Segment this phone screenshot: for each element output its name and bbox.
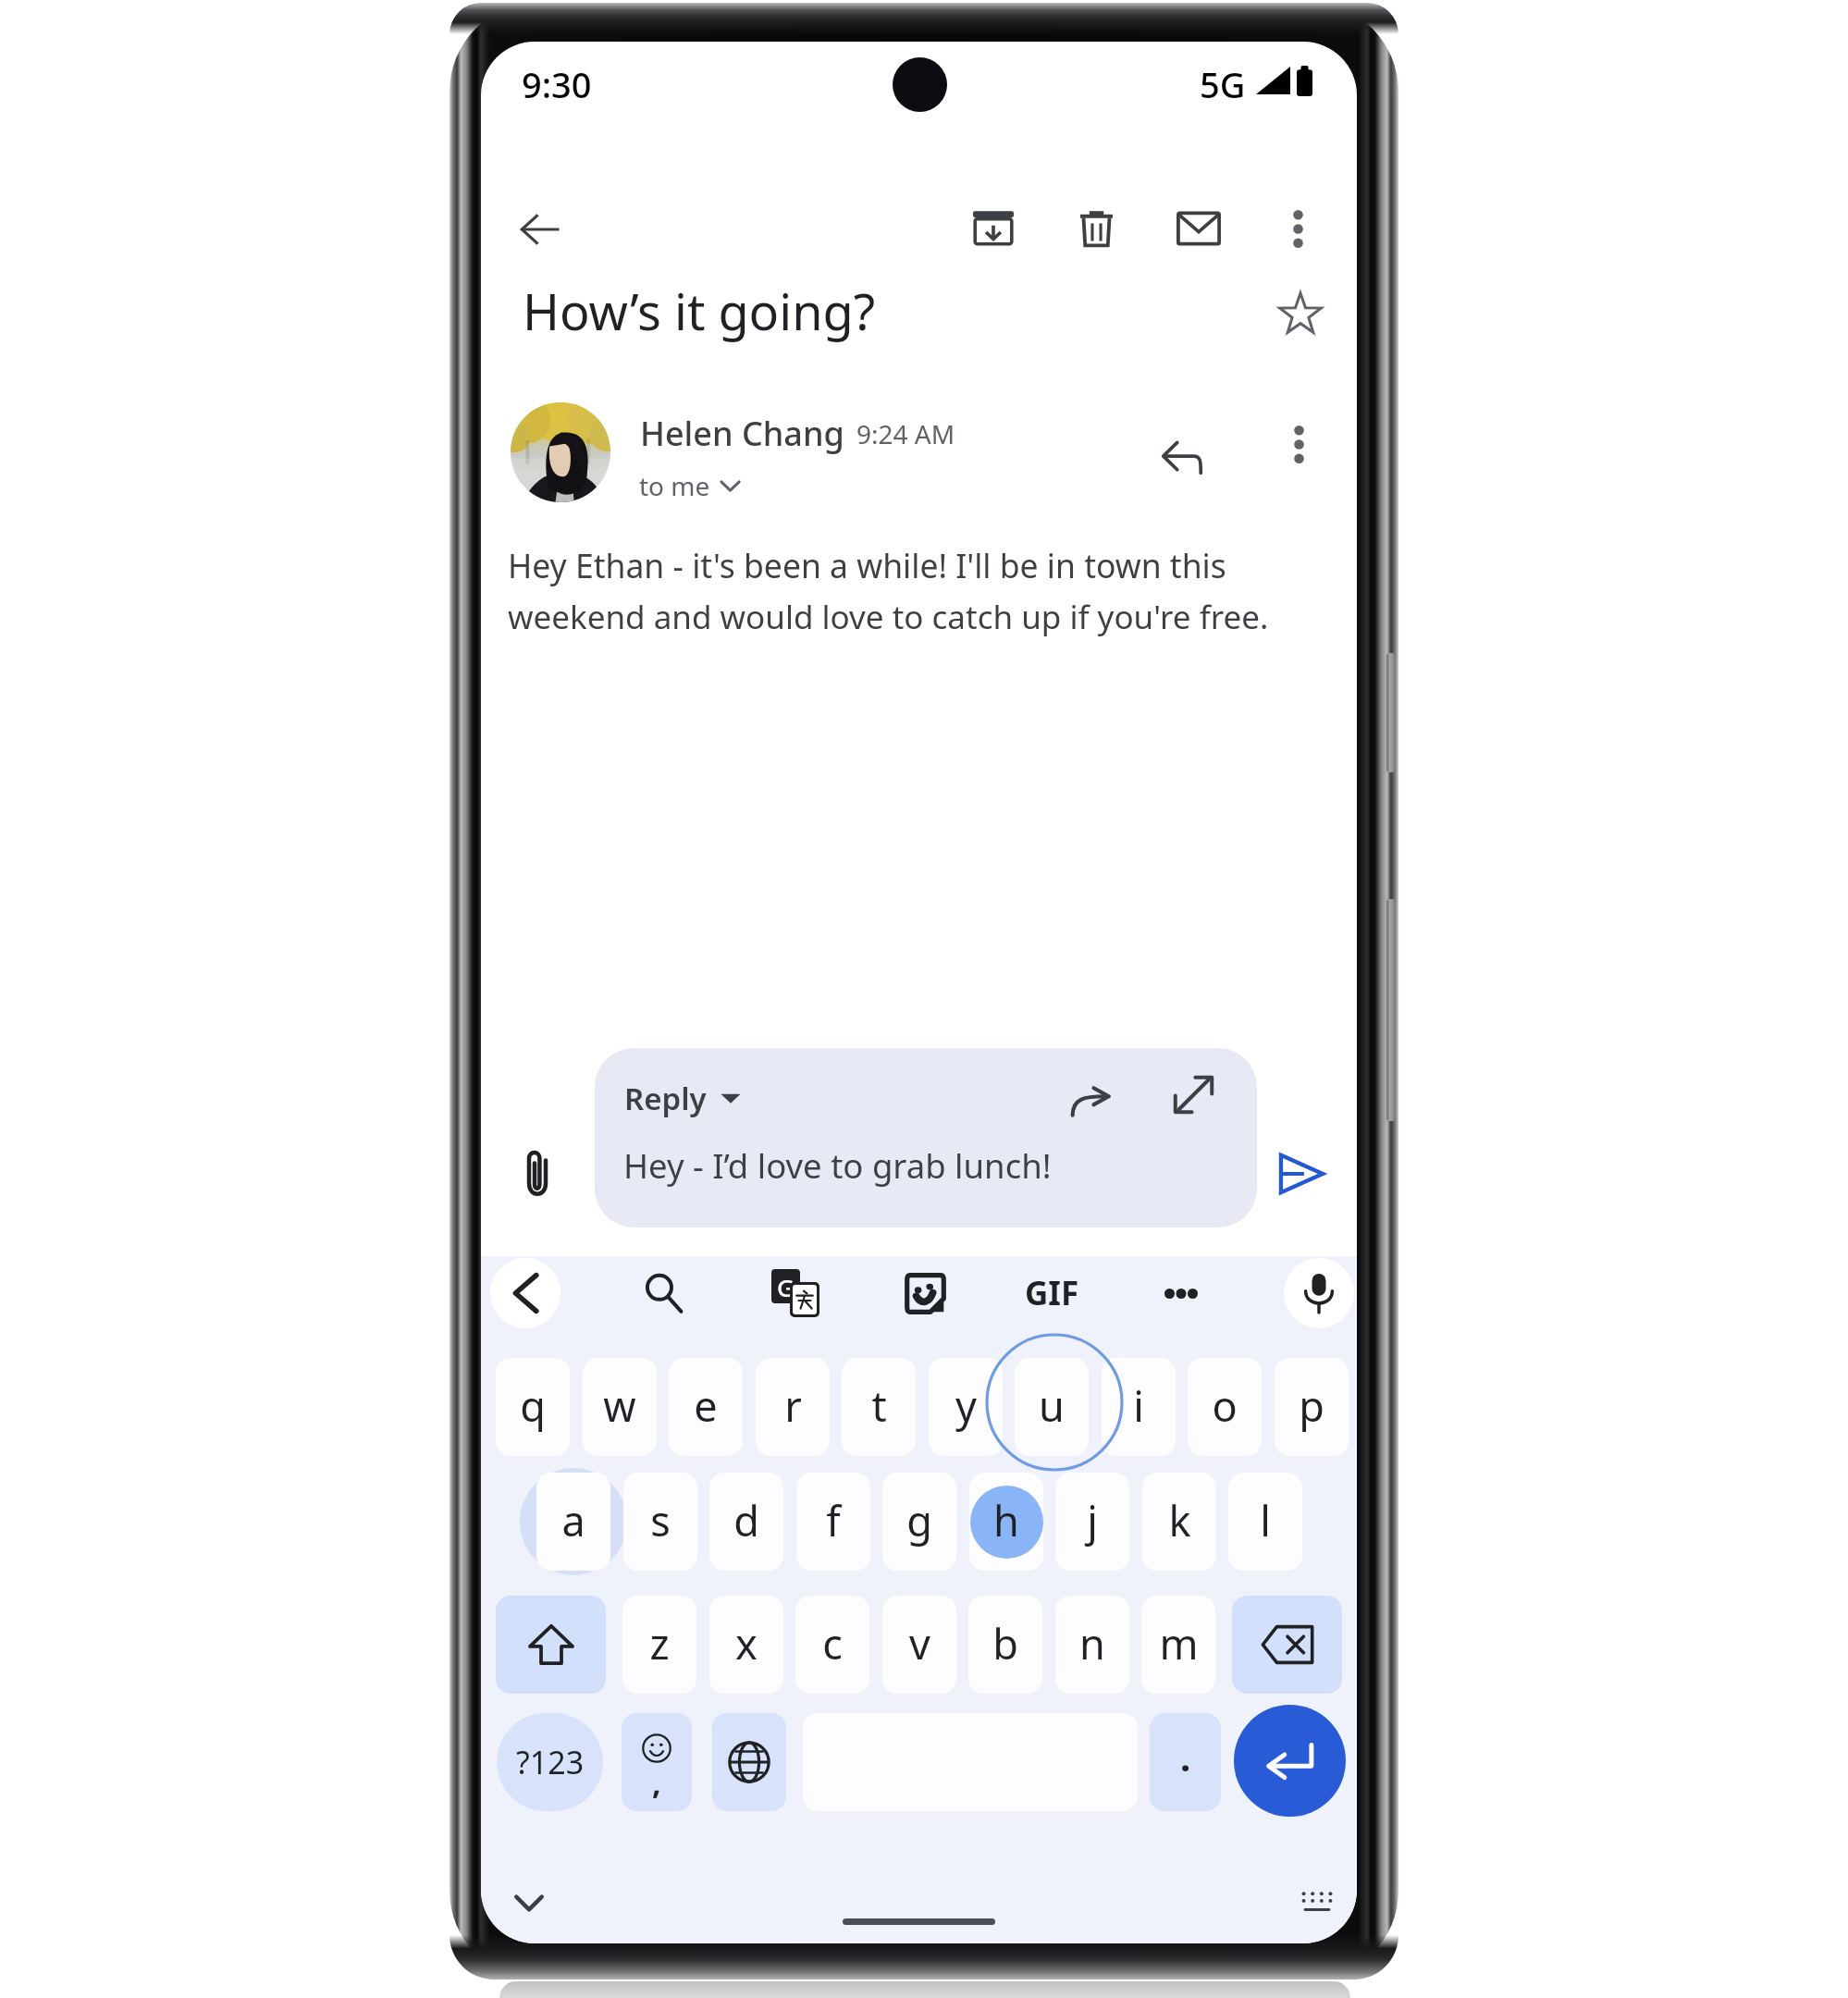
- button[interactable]: More options: [1257, 188, 1338, 269]
- staticText: e: [694, 1377, 718, 1434]
- button[interactable]: l: [1228, 1473, 1302, 1571]
- staticText: to me: [639, 468, 710, 503]
- staticText: 9:24 AM: [856, 416, 955, 451]
- staticText: q: [520, 1377, 546, 1434]
- staticText: k: [1168, 1492, 1191, 1548]
- button[interactable]: h: [969, 1473, 1043, 1571]
- staticText: o: [1212, 1377, 1238, 1434]
- button[interactable]: Emoji and comma: [622, 1713, 692, 1811]
- button[interactable]: j: [1055, 1473, 1129, 1571]
- staticText: j: [1087, 1492, 1098, 1548]
- button[interactable]: .: [1150, 1713, 1221, 1811]
- staticText: y: [955, 1377, 977, 1434]
- staticText: v: [909, 1615, 930, 1671]
- button[interactable]: f: [796, 1473, 870, 1571]
- staticText: G: [777, 1271, 795, 1303]
- button[interactable]: k: [1142, 1473, 1216, 1571]
- button[interactable]: n: [1055, 1596, 1129, 1694]
- button[interactable]: i: [1102, 1358, 1176, 1456]
- staticText: f: [826, 1492, 841, 1548]
- staticText: b: [992, 1615, 1018, 1671]
- staticText: Hey - I’d love to grab lunch!: [623, 1142, 1052, 1189]
- staticText: x: [735, 1615, 758, 1671]
- staticText: u: [1039, 1377, 1065, 1434]
- button[interactable]: Search: [631, 1260, 697, 1326]
- button[interactable]: GIF: [1005, 1267, 1098, 1319]
- button[interactable]: Delete: [1055, 188, 1137, 269]
- button[interactable]: o: [1188, 1358, 1262, 1456]
- staticText: n: [1079, 1615, 1105, 1671]
- staticText: i: [1133, 1377, 1144, 1434]
- staticText: ?123: [516, 1741, 585, 1783]
- button[interactable]: ?123: [497, 1713, 603, 1811]
- button[interactable]: Reply: [1141, 416, 1223, 498]
- staticText: r: [784, 1377, 802, 1434]
- button[interactable]: q: [496, 1358, 570, 1456]
- button[interactable]: c: [795, 1596, 869, 1694]
- button[interactable]: a: [536, 1473, 610, 1571]
- staticText: m: [1159, 1615, 1199, 1671]
- button[interactable]: d: [709, 1473, 783, 1571]
- button[interactable]: to me: [639, 468, 740, 503]
- button[interactable]: Archive: [953, 188, 1034, 269]
- staticText: l: [1260, 1492, 1271, 1548]
- staticText: p: [1299, 1377, 1324, 1434]
- button[interactable]: g: [882, 1473, 956, 1571]
- button[interactable]: e: [669, 1358, 743, 1456]
- button[interactable]: Star: [1260, 272, 1341, 353]
- button[interactable]: Backspace: [1232, 1596, 1342, 1694]
- staticText: GIF: [1025, 1271, 1079, 1315]
- staticText: .: [1180, 1732, 1191, 1782]
- button[interactable]: w: [583, 1358, 657, 1456]
- button[interactable]: Back: [490, 1258, 561, 1328]
- button[interactable]: Stickers: [892, 1260, 958, 1326]
- staticText: h: [993, 1492, 1019, 1548]
- staticText: d: [733, 1492, 759, 1548]
- button[interactable]: u: [1015, 1358, 1089, 1456]
- button[interactable]: z: [622, 1596, 696, 1694]
- button[interactable]: Shift: [496, 1596, 606, 1694]
- staticText: Helen Chang: [640, 411, 844, 456]
- staticText: Reply: [624, 1078, 707, 1119]
- button[interactable]: t: [842, 1358, 916, 1456]
- staticText: g: [906, 1492, 932, 1548]
- button[interactable]: Send: [1255, 1128, 1348, 1220]
- button[interactable]: Change language: [712, 1713, 786, 1811]
- button[interactable]: Reply: [595, 1048, 1257, 1227]
- button[interactable]: Mark unread: [1158, 188, 1239, 269]
- button[interactable]: v: [882, 1596, 956, 1694]
- staticText: w: [603, 1377, 636, 1434]
- staticText: How’s it going?: [523, 277, 876, 345]
- button[interactable]: s: [623, 1473, 697, 1571]
- button[interactable]: x: [709, 1596, 783, 1694]
- button[interactable]: Voice input: [1284, 1258, 1354, 1328]
- staticText: Hey Ethan - it's been a while! I'll be i…: [508, 543, 1226, 587]
- button[interactable]: y: [929, 1358, 1003, 1456]
- button[interactable]: Forward: [1057, 1068, 1124, 1135]
- button[interactable]: Keyboard settings: [1287, 1872, 1347, 1931]
- button[interactable]: More: [1148, 1260, 1214, 1326]
- button[interactable]: Back: [499, 189, 581, 270]
- button[interactable]: m: [1141, 1596, 1215, 1694]
- button[interactable]: Attach file: [495, 1131, 580, 1216]
- button[interactable]: Enter: [1234, 1705, 1346, 1817]
- staticText: ,: [652, 1761, 661, 1804]
- button[interactable]: Expand: [1160, 1061, 1226, 1128]
- staticText: z: [649, 1615, 670, 1671]
- staticText: 5G: [1200, 60, 1246, 108]
- button[interactable]: r: [756, 1358, 830, 1456]
- staticText: c: [822, 1615, 843, 1671]
- button[interactable]: p: [1275, 1358, 1349, 1456]
- staticText: weekend and would love to catch up if yo…: [508, 595, 1269, 639]
- button[interactable]: Translate: [762, 1260, 829, 1326]
- button[interactable]: Hide keyboard: [499, 1873, 559, 1932]
- button[interactable]: More options: [1258, 403, 1339, 485]
- staticText: 9:30: [522, 60, 592, 108]
- staticText: s: [650, 1492, 671, 1548]
- staticText: a: [561, 1492, 585, 1548]
- staticText: t: [871, 1377, 887, 1434]
- button[interactable]: b: [968, 1596, 1042, 1694]
